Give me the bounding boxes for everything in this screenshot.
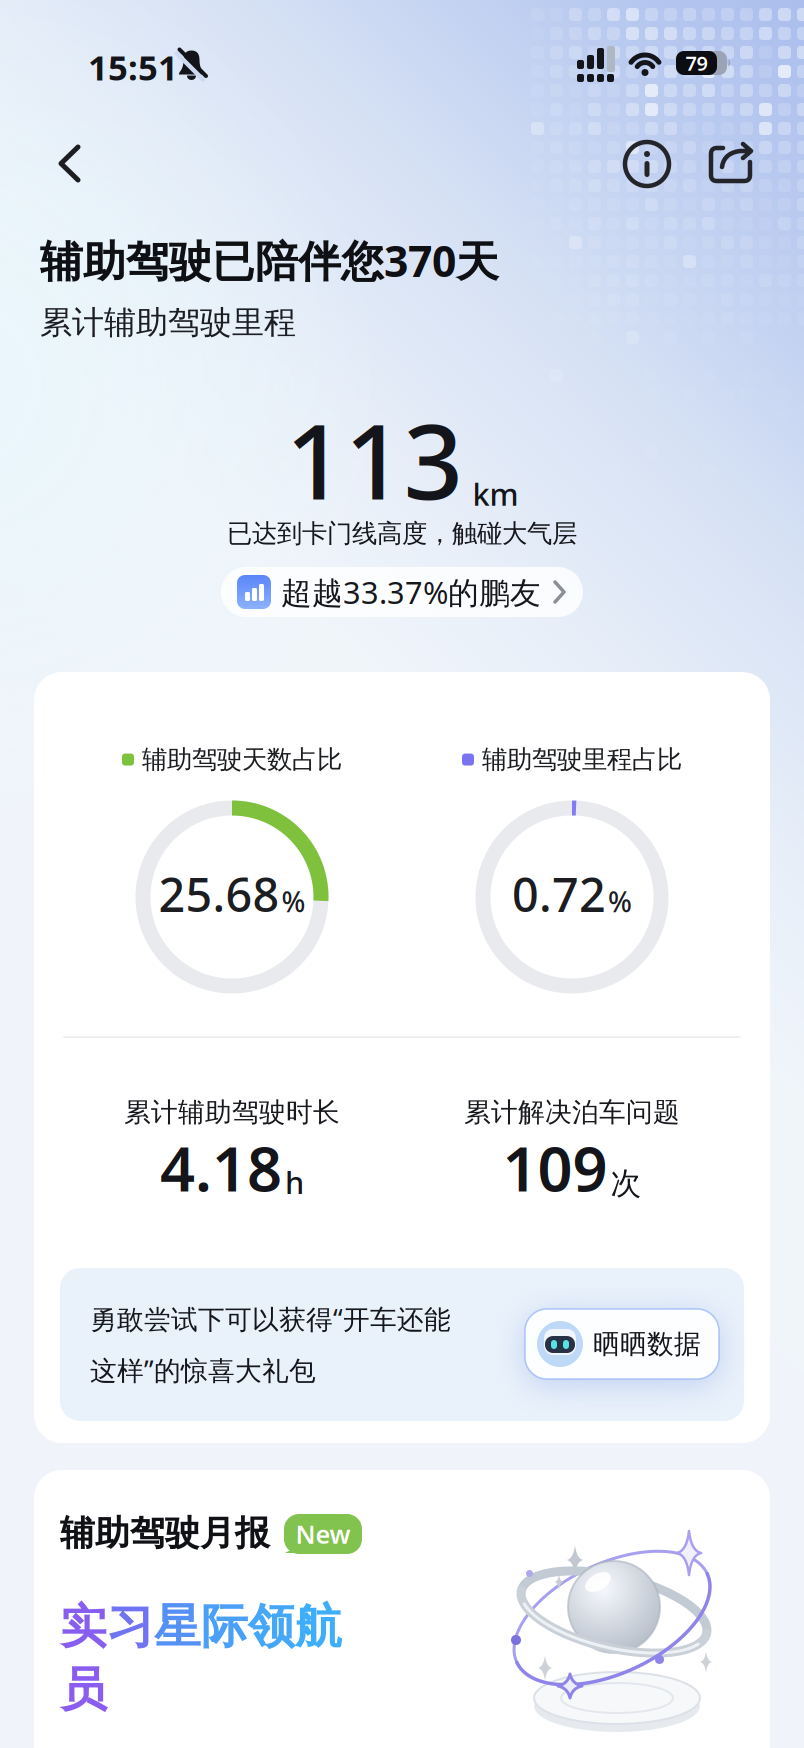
staticText: 勇敢尝试下可以获得“开车还能: [90, 1301, 451, 1336]
button[interactable]: 超越33.37%的鹏友: [221, 567, 583, 617]
staticText: 航: [295, 1598, 342, 1655]
staticText: 际: [201, 1598, 248, 1655]
staticText: 辅助驾驶已陪伴您370天: [40, 232, 499, 289]
staticText: 辅助驾驶里程占比: [482, 744, 682, 775]
staticText: 0.72: [512, 863, 606, 925]
staticText: 辅助驾驶月报: [60, 1512, 270, 1555]
staticText: 员: [60, 1661, 107, 1718]
staticText: km: [472, 473, 518, 514]
staticText: %: [281, 883, 305, 920]
staticText: 星: [154, 1598, 201, 1655]
staticText: 已达到卡门线高度，触碰大气层: [227, 518, 577, 549]
staticText: 领: [248, 1598, 295, 1655]
staticText: 109: [502, 1127, 607, 1208]
staticText: New: [295, 1517, 350, 1551]
staticText: 累计解决泊车问题: [464, 1096, 680, 1129]
staticText: 4.18: [160, 1127, 282, 1208]
button[interactable]: 晒晒数据: [525, 1309, 719, 1379]
staticText: 79: [685, 50, 707, 76]
button[interactable]: 辅助驾驶月报: [34, 1470, 770, 1748]
staticText: 次: [610, 1165, 641, 1202]
button[interactable]: Back: [48, 134, 94, 194]
staticText: 习: [107, 1598, 154, 1655]
staticText: 晒晒数据: [593, 1328, 701, 1360]
staticText: 累计辅助驾驶里程: [40, 303, 296, 342]
staticText: 25.68: [158, 863, 279, 925]
staticText: %: [608, 883, 632, 920]
staticText: h: [285, 1162, 304, 1202]
staticText: 这样”的惊喜大礼包: [90, 1352, 316, 1388]
staticText: 辅助驾驶天数占比: [142, 744, 342, 775]
button[interactable]: Share: [704, 137, 758, 189]
staticText: 实: [60, 1598, 107, 1655]
staticText: 113: [285, 390, 462, 528]
button[interactable]: Info: [619, 136, 675, 192]
staticText: 累计辅助驾驶时长: [124, 1096, 340, 1129]
staticText: 超越33.37%的鹏友: [281, 572, 541, 612]
staticText: 15:51: [88, 44, 178, 90]
